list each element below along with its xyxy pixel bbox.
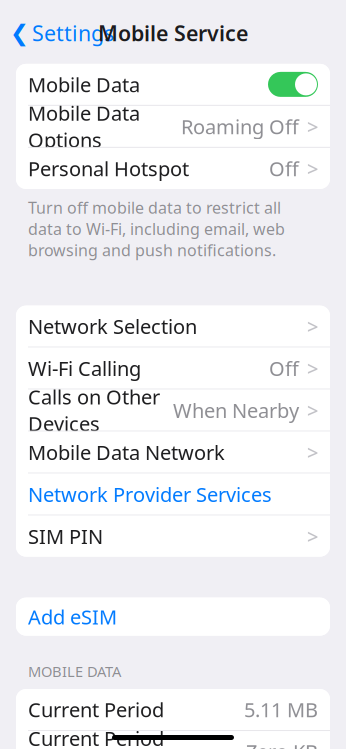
staticText: Mobile Data Network [28, 439, 225, 465]
staticText: > [307, 523, 318, 549]
button[interactable]: Mobile Data Options [16, 106, 330, 147]
staticText: Wi-Fi Calling [28, 355, 141, 381]
staticText: > [307, 313, 318, 339]
staticText: Network Selection [28, 313, 197, 339]
staticText: SIM PIN [28, 523, 103, 549]
staticText: Current Period Roaming [28, 725, 164, 749]
button[interactable]: Wi-Fi Calling [16, 348, 330, 389]
staticText: When Nearby [173, 397, 299, 423]
staticText: > [307, 113, 318, 140]
staticText: Current Period [28, 696, 164, 723]
button[interactable]: Personal Hotspot [16, 148, 330, 189]
button[interactable]: Mobile Data toggle [268, 72, 318, 97]
staticText: ❮ [10, 20, 29, 46]
staticText: Off [269, 355, 299, 381]
staticText: Add eSIM [28, 603, 117, 630]
staticText: > [307, 439, 318, 465]
staticText: Mobile Data [28, 71, 140, 98]
button[interactable]: ❮ [0, 13, 114, 53]
staticText: Roaming Off [181, 113, 299, 140]
staticText: > [307, 397, 318, 423]
button[interactable]: Network Selection [16, 306, 330, 347]
staticText: > [307, 155, 318, 182]
staticText: Mobile Data Options [28, 100, 140, 153]
staticText: > [307, 355, 318, 381]
staticText: Network Provider Services [28, 481, 272, 507]
staticText: Calls on Other Devices [28, 384, 160, 437]
staticText: Mobile Service [98, 19, 248, 47]
button[interactable]: Add eSIM [16, 598, 330, 636]
staticText: Personal Hotspot [28, 155, 189, 182]
staticText: 5.11 MB [244, 696, 318, 723]
button[interactable]: Network Provider Services [16, 474, 330, 515]
staticText: Turn off mobile data to restrict all dat… [28, 197, 285, 261]
button[interactable]: Calls on Other Devices [16, 390, 330, 431]
button[interactable]: SIM PIN [16, 516, 330, 557]
staticText: Settings [32, 19, 114, 47]
button[interactable]: Mobile Data Network [16, 432, 330, 473]
staticText: Off [269, 155, 299, 182]
staticText: Zero KB [246, 738, 318, 749]
staticText: MOBILE DATA [28, 662, 121, 681]
